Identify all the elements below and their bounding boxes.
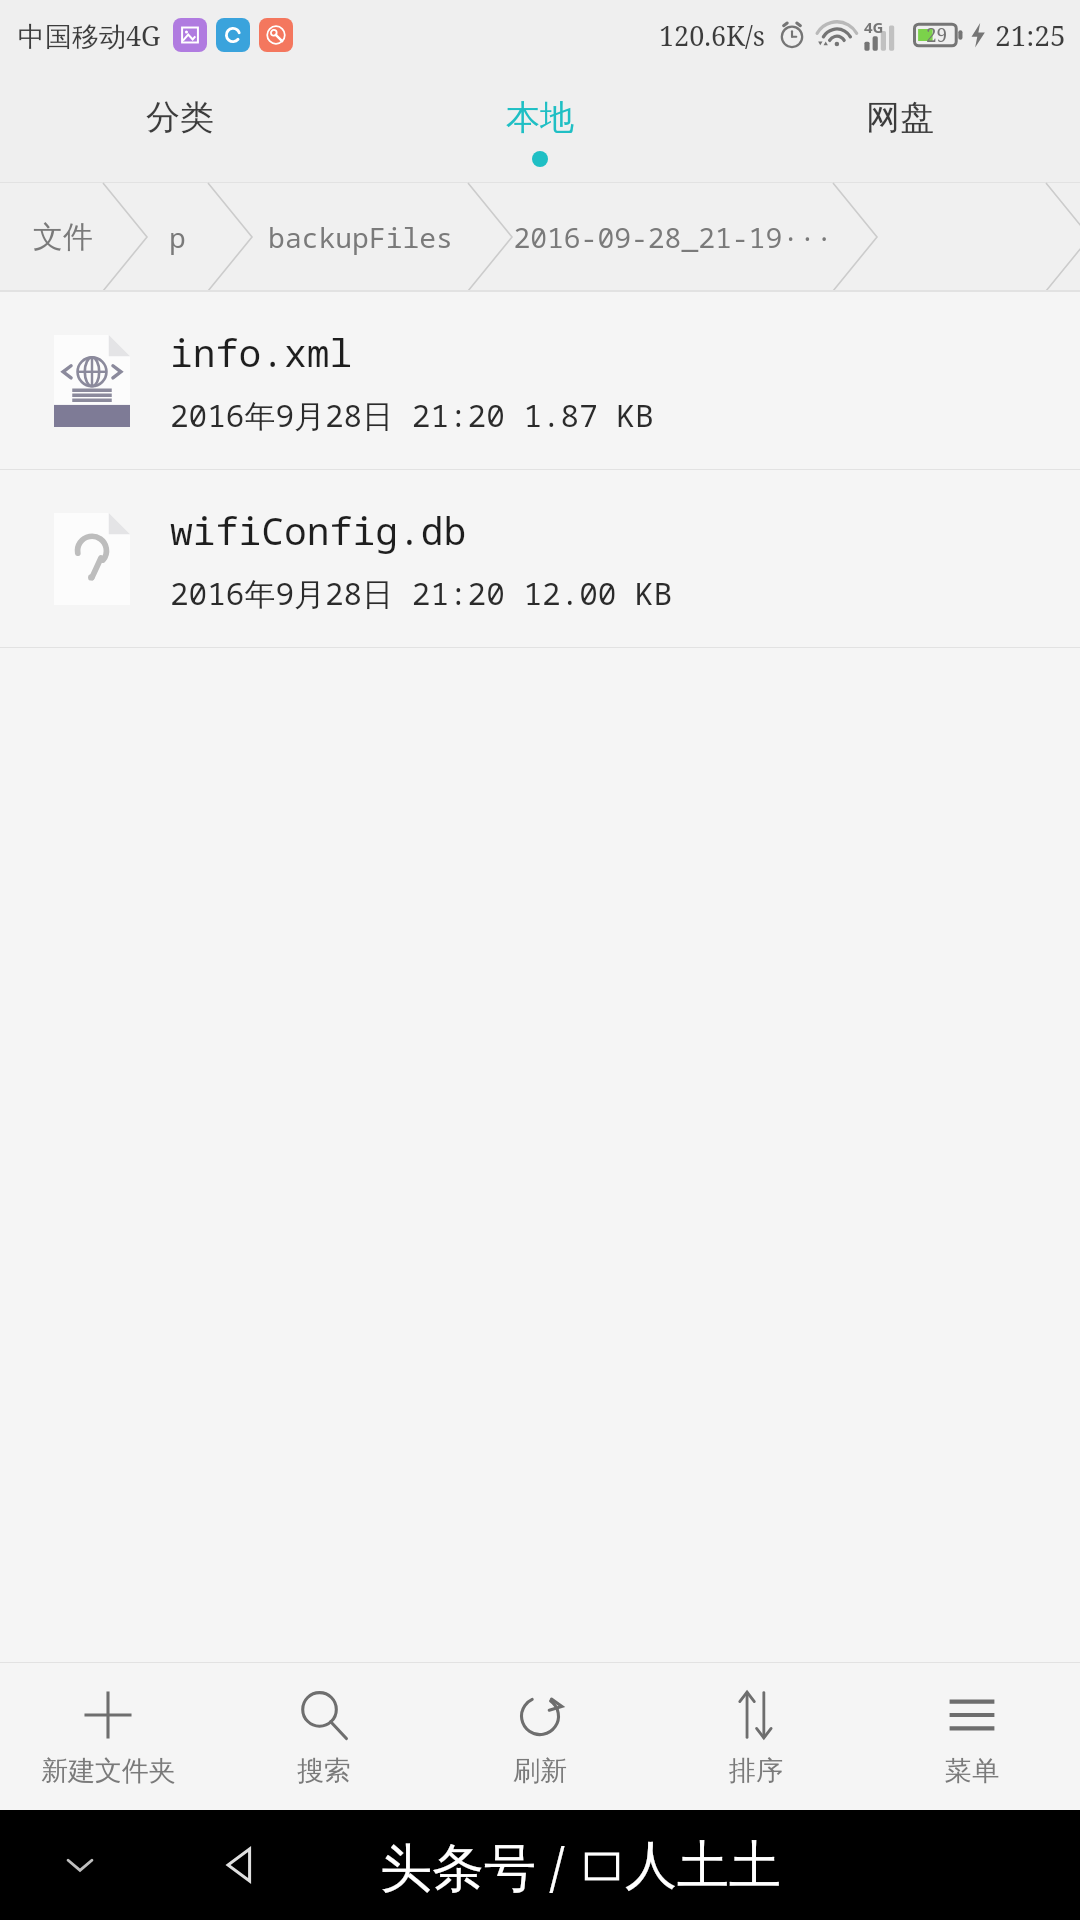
staticText: 4G: [864, 17, 884, 37]
staticText: 2016-09-28_21-19···: [513, 218, 833, 256]
staticText: 2016年9月28日 21:20 1.87 KB: [170, 394, 654, 436]
staticText: p: [169, 218, 186, 256]
button[interactable]: 网盘: [720, 70, 1080, 183]
staticText: 29: [926, 22, 948, 48]
staticText: 新建文件夹: [41, 1754, 176, 1788]
button[interactable]: 菜单: [864, 1663, 1080, 1810]
button[interactable]: Back: [205, 1830, 275, 1900]
staticText: 网盘: [866, 96, 934, 139]
button[interactable]: 分类: [0, 70, 360, 183]
button[interactable]: 文件: [0, 183, 125, 291]
staticText: backupFiles: [268, 218, 453, 256]
button[interactable]: 排序: [648, 1663, 864, 1810]
button[interactable]: info.xml: [0, 292, 1080, 469]
staticText: wifiConfig.db: [170, 504, 467, 556]
staticText: 文件: [33, 218, 93, 256]
staticText: 2016年9月28日 21:20 12.00 KB: [170, 572, 673, 614]
staticText: info.xml: [170, 326, 353, 378]
staticText: 分类: [146, 96, 214, 139]
button[interactable]: 2016-09-28_21-19···: [490, 183, 855, 291]
button[interactable]: backupFiles: [230, 183, 490, 291]
button[interactable]: p: [125, 183, 230, 291]
button[interactable]: 刷新: [432, 1663, 648, 1810]
staticText: 搜索: [297, 1754, 351, 1788]
staticText: 21:25: [995, 16, 1066, 54]
staticText: 本地: [506, 96, 574, 139]
staticText: 120.6K/s: [659, 17, 765, 54]
staticText: 排序: [729, 1754, 783, 1788]
button[interactable]: Hide keyboard: [48, 1833, 112, 1897]
button[interactable]: 新建文件夹: [0, 1663, 216, 1810]
staticText: 中国移动4G: [18, 17, 161, 54]
button[interactable]: wifiConfig.db: [0, 470, 1080, 647]
button[interactable]: 本地: [360, 70, 720, 183]
button[interactable]: 搜索: [216, 1663, 432, 1810]
staticText: 菜单: [945, 1754, 999, 1788]
staticText: 刷新: [513, 1754, 567, 1788]
staticText: 人土土: [625, 1833, 781, 1899]
staticText: 头条号 /: [380, 1830, 579, 1901]
